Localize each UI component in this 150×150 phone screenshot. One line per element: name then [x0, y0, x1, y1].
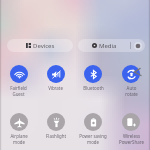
button[interactable]: Media [78, 39, 130, 52]
button[interactable]: Devices [7, 39, 73, 52]
staticText: Auto rotate [125, 85, 138, 97]
button[interactable]: Settings [131, 39, 145, 52]
button[interactable]: Flashlight [37, 113, 74, 139]
staticText: Wireless PowerShare [119, 133, 144, 145]
staticText: Airplane mode [10, 133, 28, 145]
button[interactable]: Power saving mode [74, 113, 112, 145]
staticText: Power saving mode [79, 133, 107, 145]
button[interactable]: Vibrate [37, 65, 74, 91]
button[interactable]: Auto rotate [112, 65, 150, 97]
staticText: Fairfield Guest [10, 85, 27, 97]
button[interactable]: Airplane mode [0, 113, 37, 145]
button[interactable]: Bluetooth [74, 65, 112, 91]
staticText: Devices [33, 42, 55, 50]
staticText: Media [99, 42, 117, 50]
staticText: Bluetooth [83, 85, 104, 91]
staticText: Flashlight [46, 133, 66, 139]
button[interactable]: Fairfield Guest [0, 65, 37, 97]
button[interactable]: Wireless PowerShare [112, 113, 150, 145]
staticText: Vibrate [48, 85, 63, 91]
